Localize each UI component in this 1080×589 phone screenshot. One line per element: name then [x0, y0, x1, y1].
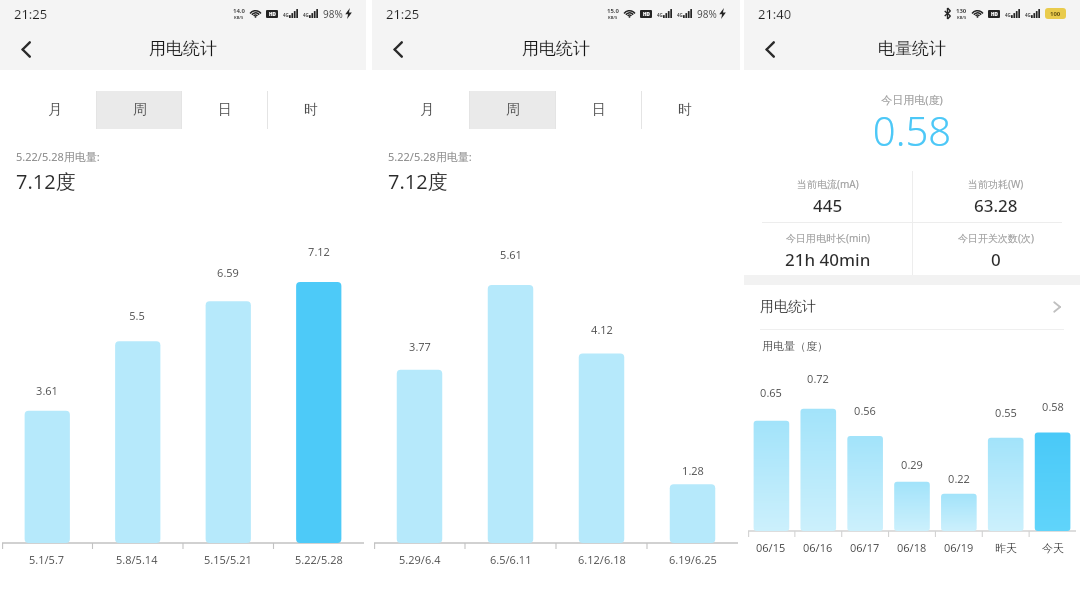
staticText: 15.0: [607, 7, 619, 15]
staticText: 130: [956, 7, 967, 15]
staticText: 5.61: [500, 247, 522, 262]
staticText: 0.22: [948, 471, 970, 486]
staticText: 0.56: [854, 403, 876, 418]
staticText: 445: [813, 194, 843, 217]
staticText: 5.22/5.28用电量:: [388, 149, 472, 164]
staticText: 用电统计: [149, 38, 217, 59]
staticText: 0: [991, 248, 1001, 271]
button[interactable]: 月: [12, 91, 97, 129]
button[interactable]: 日: [182, 91, 268, 129]
staticText: 6.19/6.25: [669, 552, 717, 567]
staticText: 6.5/6.11: [490, 552, 532, 567]
staticText: 0.58: [744, 103, 1080, 157]
staticText: 7.12度: [388, 168, 448, 195]
staticText: 当前功耗(W): [968, 177, 1024, 191]
staticText: 4G: [1025, 12, 1031, 18]
button[interactable]: Back: [380, 31, 416, 67]
staticText: 用电统计: [760, 298, 816, 316]
staticText: 月: [420, 101, 434, 119]
staticText: 4G: [283, 12, 289, 18]
staticText: 0.29: [901, 457, 923, 472]
staticText: 昨天: [995, 541, 1017, 555]
staticText: HD: [643, 11, 650, 17]
staticText: 今日开关次数(次): [958, 231, 1034, 245]
staticText: 0.55: [995, 405, 1017, 420]
staticText: HD: [991, 11, 998, 17]
staticText: 3.61: [36, 383, 58, 398]
staticText: 5.29/6.4: [399, 552, 441, 567]
staticText: 21h 40min: [785, 248, 871, 271]
staticText: 日: [592, 101, 606, 119]
staticText: 日: [218, 101, 232, 119]
staticText: 0.58: [1042, 399, 1064, 414]
staticText: 用电量（度）: [762, 339, 828, 353]
staticText: 4G: [677, 12, 683, 18]
staticText: 1.28: [682, 463, 704, 478]
staticText: 06/18: [897, 540, 927, 555]
staticText: 5.1/5.7: [29, 552, 65, 567]
staticText: 0.65: [760, 385, 782, 400]
staticText: 4.12: [591, 322, 613, 337]
staticText: 21:40: [758, 5, 792, 23]
staticText: 电量统计: [878, 38, 946, 59]
staticText: 周: [506, 101, 520, 119]
staticText: 06/15: [756, 540, 786, 555]
staticText: 7.12度: [16, 168, 76, 195]
staticText: 5.22/5.28用电量:: [16, 149, 100, 164]
button[interactable]: Back: [8, 31, 44, 67]
staticText: KB/S: [957, 15, 967, 20]
button[interactable]: 日: [556, 91, 642, 129]
staticText: 时: [678, 101, 692, 119]
button[interactable]: 周: [470, 91, 556, 129]
staticText: 21:25: [386, 5, 420, 23]
button[interactable]: 时: [642, 91, 728, 129]
button[interactable]: 用电统计: [744, 285, 1080, 329]
button[interactable]: 月: [384, 91, 470, 129]
staticText: 5.8/5.14: [116, 552, 158, 567]
staticText: 7.12: [308, 244, 330, 259]
staticText: 14.0: [233, 7, 245, 15]
staticText: 63.28: [974, 194, 1018, 217]
staticText: 4G: [303, 12, 309, 18]
button[interactable]: Back: [752, 31, 788, 67]
staticText: 4G: [657, 12, 663, 18]
staticText: 6.12/6.18: [578, 552, 626, 567]
staticText: 今天: [1042, 541, 1064, 555]
staticText: 5.5: [129, 308, 145, 323]
button[interactable]: 周: [97, 91, 182, 129]
staticText: KB/S: [608, 15, 618, 20]
staticText: 4G: [1005, 12, 1011, 18]
staticText: 0.72: [807, 371, 829, 386]
staticText: HD: [269, 11, 276, 17]
staticText: 月: [48, 101, 62, 119]
staticText: 周: [133, 101, 147, 119]
staticText: 98%: [697, 7, 717, 21]
staticText: 时: [304, 101, 318, 119]
staticText: 今日用电(度): [744, 92, 1080, 107]
staticText: 当前电流(mA): [797, 177, 859, 191]
staticText: 06/17: [850, 540, 880, 555]
staticText: 今日用电时长(min): [786, 231, 871, 245]
staticText: 06/16: [803, 540, 833, 555]
staticText: 6.59: [217, 265, 239, 280]
staticText: KB/S: [234, 15, 244, 20]
staticText: 100: [1050, 10, 1061, 18]
button[interactable]: 时: [268, 91, 354, 129]
staticText: 5.22/5.28: [295, 552, 343, 567]
staticText: 98%: [323, 7, 343, 21]
staticText: 21:25: [14, 5, 48, 23]
staticText: 用电统计: [522, 38, 590, 59]
staticText: 5.15/5.21: [204, 552, 252, 567]
staticText: 3.77: [409, 339, 431, 354]
staticText: 06/19: [944, 540, 974, 555]
